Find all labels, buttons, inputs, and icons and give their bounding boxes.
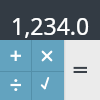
staticText: 1,234.0 <box>11 10 90 41</box>
button[interactable]: Square root <box>32 72 64 100</box>
button[interactable]: Divide <box>0 72 31 100</box>
button[interactable]: Plus <box>0 40 31 71</box>
button[interactable]: Multiply <box>32 40 64 71</box>
button[interactable]: Equals <box>64 40 100 100</box>
